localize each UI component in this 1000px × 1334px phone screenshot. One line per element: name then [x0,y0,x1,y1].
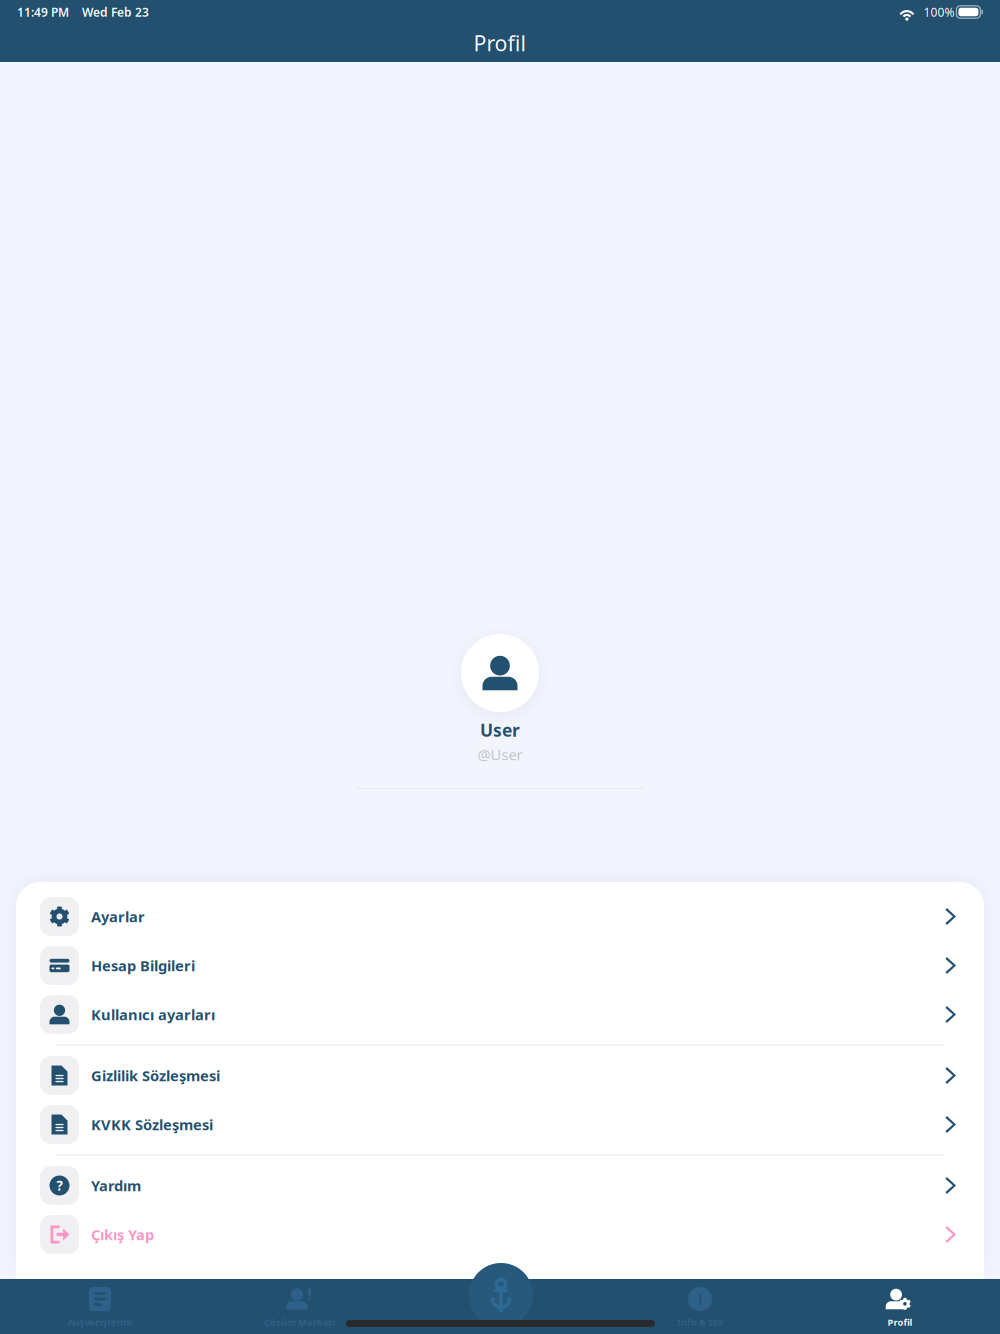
button[interactable]: Profil [800,1286,1000,1334]
button[interactable]: Kullanıcı ayarları [16,990,984,1039]
staticText: Kullanıcı ayarları [91,1005,215,1024]
staticText: 11:49 PM [17,4,69,20]
staticText: Info & SSS [677,1316,723,1328]
staticText: KVKK Sözleşmesi [91,1115,213,1134]
staticText: 100% [923,4,954,20]
staticText: User [480,718,520,741]
staticText: Hesap Bilgileri [91,956,195,975]
button[interactable]: Hesap Bilgileri [16,941,984,990]
staticText: Gizlilik Sözleşmesi [91,1066,220,1085]
button[interactable]: Çözüm Merkezi [200,1286,400,1334]
button[interactable]: Çıkış Yap [16,1210,984,1259]
staticText: Çözüm Merkezi [264,1316,336,1328]
staticText: @User [477,745,522,764]
button[interactable]: Gizlilik Sözleşmesi [16,1051,984,1100]
staticText: ? [56,1177,62,1194]
staticText: Alışverişlerim [67,1316,132,1328]
button[interactable]: i [600,1286,800,1334]
button[interactable]: ? [16,1161,984,1210]
staticText: Çıkış Yap [91,1225,154,1244]
button[interactable]: Alışverişlerim [0,1286,200,1334]
staticText: Profil [473,29,526,57]
button[interactable]: KVKK Sözleşmesi [16,1100,984,1149]
button[interactable]: Anchor [469,1263,533,1327]
staticText: Ayarlar [91,907,145,926]
button[interactable]: Ayarlar [16,892,984,941]
staticText: i [698,1289,702,1309]
staticText: Profil [887,1316,912,1328]
staticText: Wed Feb 23 [82,4,149,20]
staticText: Yardım [91,1176,141,1195]
